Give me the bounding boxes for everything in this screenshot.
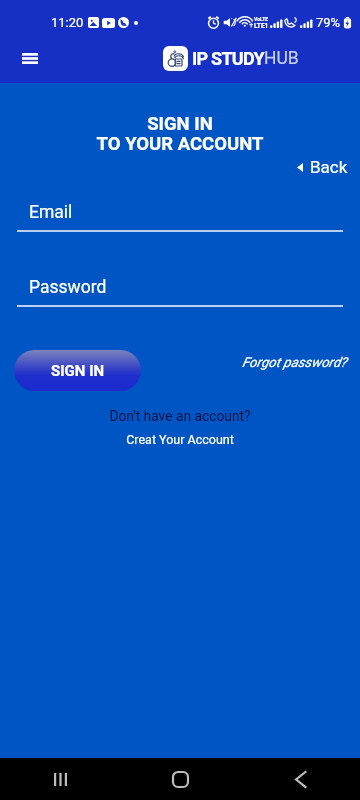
button[interactable]: Recent apps [36,758,84,800]
button[interactable]: Back [276,758,324,800]
staticText: SIGN IN TO YOUR ACCOUNT [0,113,360,154]
staticText: Email [29,202,73,223]
staticText: 79% [316,15,341,30]
button[interactable]: Creat Your Account [0,432,360,447]
staticText: VoLTE [254,16,269,22]
button[interactable]: Open navigation menu [12,40,48,76]
staticText: Don't have an account? [0,408,360,424]
staticText: Password [29,277,107,298]
button[interactable]: SIGN IN [14,350,141,391]
staticText: Back [310,157,348,177]
button[interactable]: Back [297,157,348,177]
button[interactable]: Home [156,758,204,800]
staticText: HUB [264,48,299,69]
button[interactable]: Forgot password? [242,354,360,370]
staticText: 11:20 [51,15,84,30]
staticText: LTE1 [254,22,269,30]
staticText: SIGN IN [51,362,105,380]
staticText: IP STUDY [192,48,264,69]
button[interactable]: IP STUDY [163,46,299,71]
